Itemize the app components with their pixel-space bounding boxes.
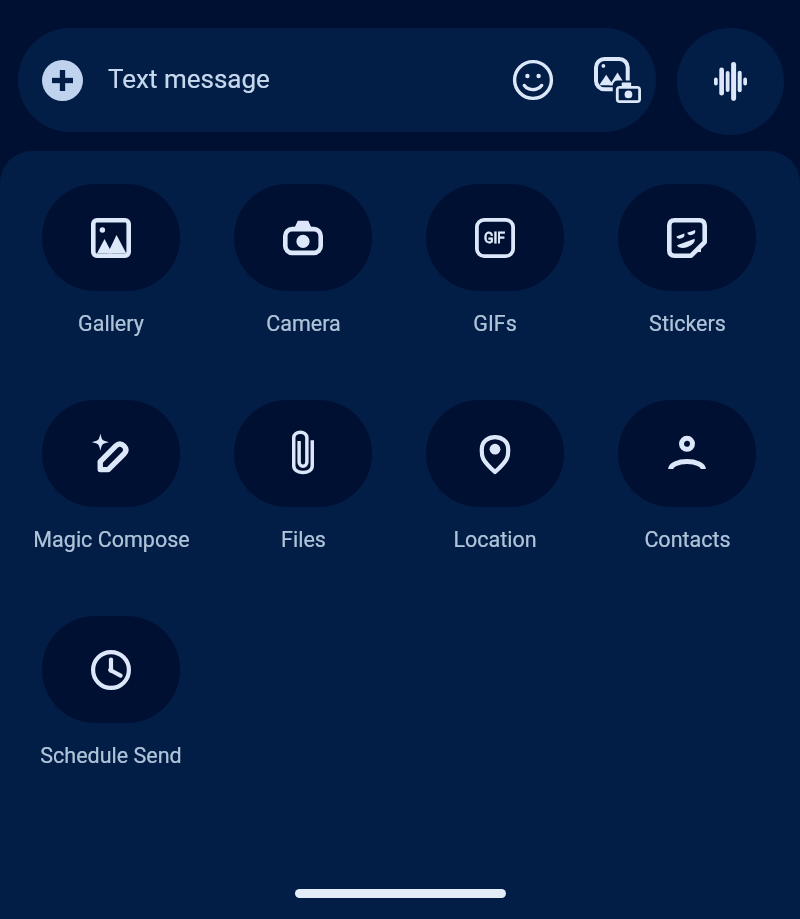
staticText: Magic Compose xyxy=(33,527,190,552)
button[interactable]: Contacts xyxy=(618,400,756,507)
button[interactable]: Gallery xyxy=(42,184,180,291)
staticText: Gallery xyxy=(78,311,144,336)
button[interactable]: Camera xyxy=(234,184,372,291)
staticText: Camera xyxy=(266,311,341,336)
button[interactable]: Schedule Send xyxy=(42,616,180,723)
button[interactable]: Stickers xyxy=(618,184,756,291)
staticText: Stickers xyxy=(649,311,726,336)
staticText: Location xyxy=(453,527,537,552)
button[interactable]: Gallery and camera xyxy=(589,52,645,108)
staticText: Schedule Send xyxy=(40,743,182,768)
button[interactable]: GIFs xyxy=(426,184,564,291)
staticText: Contacts xyxy=(644,527,731,552)
staticText: Files xyxy=(281,527,326,552)
button[interactable]: Magic Compose xyxy=(42,400,180,507)
staticText: Text message xyxy=(108,64,270,94)
button[interactable]: Add attachment xyxy=(42,60,83,101)
button[interactable]: Add attachment xyxy=(18,28,656,132)
staticText: GIFs xyxy=(473,311,517,336)
button[interactable]: Location xyxy=(426,400,564,507)
staticText: GIF xyxy=(484,230,506,246)
button[interactable]: Emoji xyxy=(505,52,561,108)
button[interactable]: Files xyxy=(234,400,372,507)
button[interactable]: Voice message xyxy=(677,28,784,135)
